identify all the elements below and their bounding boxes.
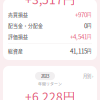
staticText: 年間リターン xyxy=(38,81,62,87)
staticText: 月別 xyxy=(83,73,91,79)
staticText: 円 xyxy=(87,33,91,40)
staticText: +4,541 xyxy=(70,32,87,41)
staticText: 41,115 xyxy=(70,46,87,55)
staticText: +970 xyxy=(75,10,87,19)
staticText: 円 xyxy=(87,48,91,54)
staticText: 円 xyxy=(87,22,91,29)
staticText: 売買損益 xyxy=(8,11,28,18)
staticText: 円 xyxy=(87,11,91,18)
staticText: 評価損益 xyxy=(8,33,28,40)
staticText: +6,228円 xyxy=(25,88,75,100)
staticText: › xyxy=(92,73,93,79)
staticText: 0 xyxy=(84,21,87,30)
staticText: 配当金・分配金 xyxy=(8,22,43,29)
staticText: +3,517円 xyxy=(25,0,75,8)
button[interactable]: 月別 xyxy=(83,73,93,79)
button[interactable]: 2023 xyxy=(35,72,55,80)
staticText: 2023 xyxy=(41,73,49,79)
staticText: 総資産 xyxy=(8,47,23,54)
